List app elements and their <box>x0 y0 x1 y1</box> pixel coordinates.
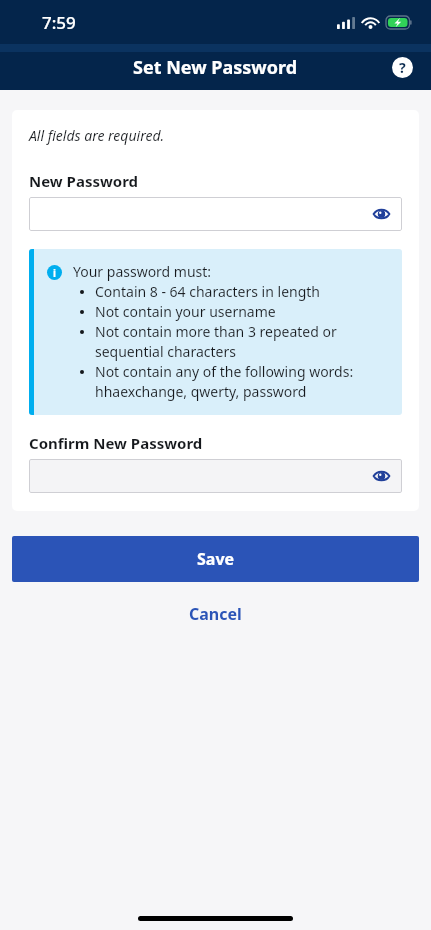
staticText: 7:59 <box>42 11 76 34</box>
button[interactable]: Show password <box>29 459 402 493</box>
button[interactable]: Cancel <box>167 596 264 632</box>
staticText: Your password must: <box>73 262 212 281</box>
button[interactable]: Show password <box>369 202 393 226</box>
staticText: Confirm New Password <box>29 433 203 453</box>
button[interactable]: Show password <box>29 197 402 231</box>
staticText: i <box>53 266 56 280</box>
staticText: Contain 8 - 64 characters in length <box>95 282 320 301</box>
staticText: New Password <box>29 171 139 191</box>
button[interactable]: Save <box>12 536 419 582</box>
button[interactable]: Show password <box>369 464 393 488</box>
staticText: Not contain more than 3 repeated or sequ… <box>95 322 394 361</box>
staticText: Set New Password <box>133 55 298 80</box>
staticText: Save <box>197 548 235 570</box>
staticText: Not contain any of the following words: … <box>95 362 394 401</box>
staticText: Cancel <box>189 603 242 625</box>
staticText: All fields are required. <box>29 126 165 145</box>
staticText: Not contain your username <box>95 302 276 321</box>
button[interactable]: Help <box>386 51 418 83</box>
staticText: ? <box>399 58 406 77</box>
